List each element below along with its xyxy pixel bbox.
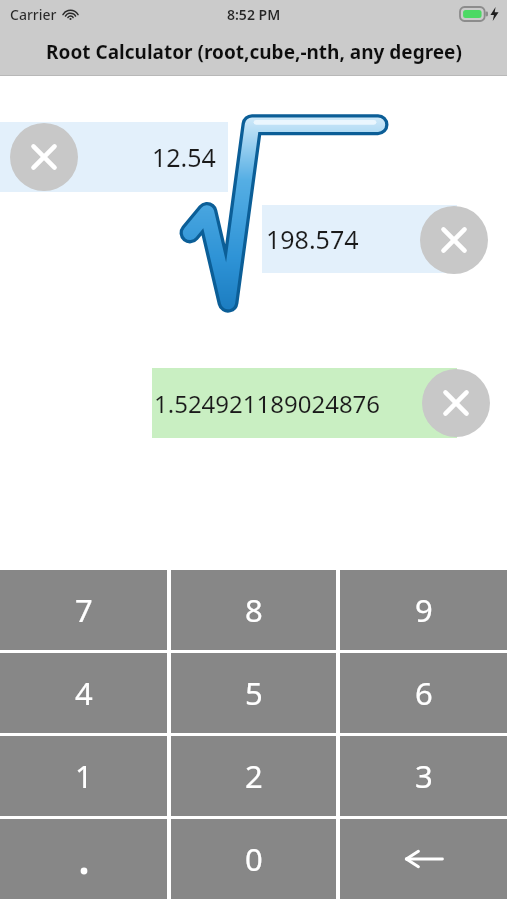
button[interactable]: 2 — [171, 736, 336, 816]
button[interactable]: Backspace — [340, 819, 507, 899]
button[interactable]: 6 — [340, 653, 507, 733]
button[interactable]: 0 — [171, 819, 336, 899]
staticText: 6 — [415, 672, 433, 714]
staticText: 7 — [75, 589, 93, 631]
button[interactable]: 4 — [0, 653, 167, 733]
button[interactable]: 1.524921189024876 — [152, 368, 457, 438]
button[interactable]: Clear first value — [10, 123, 78, 191]
button[interactable]: 3 — [340, 736, 507, 816]
button[interactable]: 5 — [171, 653, 336, 733]
staticText: 1.524921189024876 — [154, 387, 381, 420]
button[interactable]: 198.574 — [262, 205, 457, 273]
button[interactable]: Clear second value — [420, 206, 488, 274]
staticText: 9 — [415, 589, 433, 631]
button[interactable]: 1 — [0, 736, 167, 816]
staticText: 1 — [75, 755, 93, 797]
staticText: 2 — [245, 755, 263, 797]
staticText: Carrier — [10, 5, 57, 24]
staticText: Root Calculator (root,cube,-nth, any deg… — [46, 39, 462, 65]
staticText: 3 — [415, 755, 433, 797]
button[interactable]: 7 — [0, 570, 167, 650]
button[interactable]: 12.54 — [0, 122, 228, 192]
button[interactable]: 8 — [171, 570, 336, 650]
staticText: 0 — [245, 838, 263, 880]
staticText: 198.574 — [266, 222, 359, 256]
button[interactable] — [0, 819, 167, 899]
staticText: 8:52 PM — [227, 5, 281, 24]
staticText: 12.54 — [152, 140, 216, 174]
staticText: 8 — [245, 589, 263, 631]
staticText: 5 — [245, 672, 263, 714]
button[interactable]: Clear result — [422, 369, 490, 437]
staticText: 4 — [75, 672, 93, 714]
button[interactable]: 9 — [340, 570, 507, 650]
